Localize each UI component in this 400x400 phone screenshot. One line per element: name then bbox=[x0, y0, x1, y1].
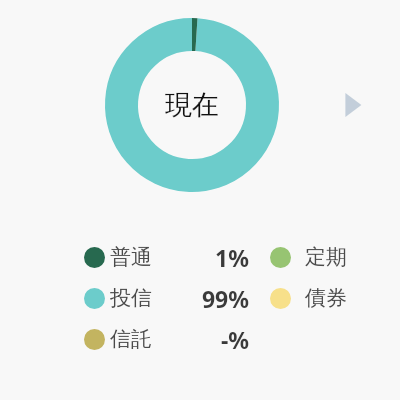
staticText: 債券 bbox=[305, 285, 347, 311]
staticText: 投信 bbox=[110, 285, 152, 311]
button[interactable] bbox=[270, 288, 291, 309]
staticText: 普通 bbox=[110, 244, 152, 270]
button[interactable] bbox=[84, 247, 105, 268]
staticText: 現在 bbox=[165, 88, 219, 122]
button[interactable] bbox=[84, 329, 105, 350]
button[interactable]: Current allocation donut chart bbox=[0, 0, 400, 400]
staticText: 信託 bbox=[110, 326, 152, 352]
staticText: 1% bbox=[215, 242, 249, 272]
button[interactable] bbox=[270, 247, 291, 268]
button[interactable]: Next bbox=[336, 86, 370, 124]
staticText: 99% bbox=[201, 283, 249, 313]
button[interactable] bbox=[84, 288, 105, 309]
staticText: 定期 bbox=[305, 244, 347, 270]
staticText: -% bbox=[220, 324, 249, 354]
